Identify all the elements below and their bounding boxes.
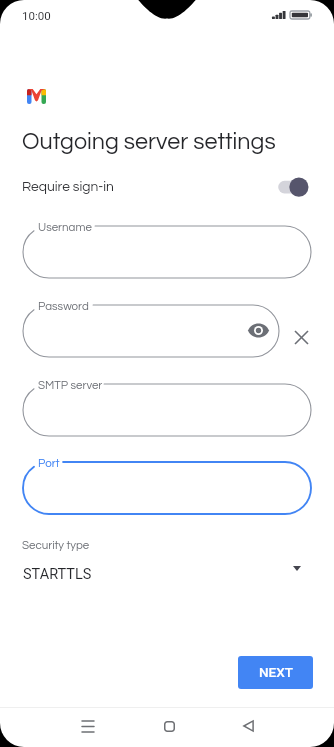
button[interactable]: Clear [289, 325, 313, 349]
button[interactable]: Back [228, 706, 268, 746]
button[interactable]: Show password [245, 317, 271, 343]
staticText: Security type [22, 540, 90, 552]
button[interactable]: Require sign-in [0, 172, 334, 204]
staticText: Outgoing server settings [22, 130, 276, 154]
staticText: SMTP server [38, 380, 103, 392]
staticText: Port [38, 458, 60, 470]
staticText: Require sign-in [22, 180, 114, 194]
button[interactable]: Recent apps [68, 706, 108, 746]
button[interactable]: SMTP server [23, 374, 311, 446]
button[interactable]: Username [23, 216, 311, 288]
button[interactable]: Security type [0, 534, 334, 590]
button[interactable]: Port [23, 452, 311, 524]
staticText: Username [38, 222, 92, 234]
staticText: 10:00 [22, 9, 51, 22]
button[interactable]: Home [149, 706, 189, 746]
button[interactable]: Password [23, 295, 279, 367]
staticText: STARTTLS [23, 566, 92, 583]
button[interactable]: NEXT [238, 656, 313, 689]
staticText: Password [38, 301, 89, 313]
staticText: NEXT [259, 664, 293, 680]
